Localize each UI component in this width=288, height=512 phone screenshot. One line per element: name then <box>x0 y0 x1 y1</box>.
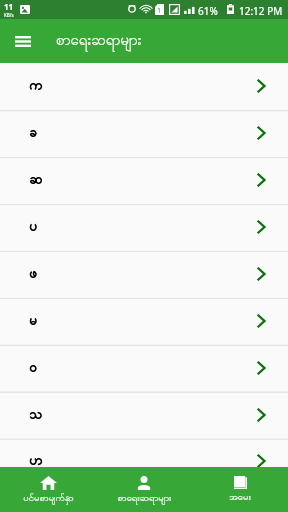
button[interactable]: ဝ <box>0 345 288 392</box>
staticText: ဖ <box>29 264 38 285</box>
staticText: 12:12 PM <box>239 4 283 18</box>
staticText: ဖ <box>29 264 38 285</box>
button[interactable]: မ <box>0 298 288 345</box>
staticText: ခ <box>29 123 38 144</box>
button[interactable]: ဖ <box>0 251 288 298</box>
staticText: ဝ <box>29 358 38 379</box>
staticText: 1 <box>157 6 162 16</box>
staticText: မ <box>29 311 38 332</box>
staticText: 61% <box>198 4 218 18</box>
staticText: ဟ <box>29 451 43 472</box>
staticText: ပ <box>29 217 38 238</box>
staticText: အမေး <box>229 491 251 505</box>
button[interactable]: ခ <box>0 110 288 157</box>
button[interactable]: ပ <box>0 204 288 251</box>
button[interactable]: Menu <box>0 19 46 63</box>
button[interactable]: အမေး <box>192 467 288 512</box>
staticText: KB/s <box>4 12 14 18</box>
staticText: ဟ <box>29 451 43 472</box>
button[interactable]: ဟ <box>0 438 288 485</box>
button[interactable]: သ <box>0 392 288 439</box>
staticText: သ <box>29 405 43 426</box>
button[interactable]: စာရေးဆရာများ <box>96 467 192 512</box>
staticText: က <box>29 76 43 97</box>
staticText: ခ <box>29 123 38 144</box>
staticText: စာရေးဆရာများ <box>56 30 142 52</box>
staticText: 11 <box>4 1 14 12</box>
staticText: စာရေးဆရာများ <box>117 492 172 506</box>
staticText: ဝ <box>29 358 38 379</box>
staticText: ဆ <box>29 170 43 191</box>
button[interactable]: ပင်မစာမျက်နှာ <box>0 467 96 512</box>
button[interactable]: ဆ <box>0 157 288 204</box>
staticText: ပင်မစာမျက်နှာ <box>23 492 74 506</box>
button[interactable]: က <box>0 63 288 110</box>
staticText: ဆ <box>29 170 43 191</box>
staticText: မ <box>29 311 38 332</box>
staticText: သ <box>29 405 43 426</box>
staticText: ပ <box>29 217 38 238</box>
staticText: က <box>29 76 43 97</box>
